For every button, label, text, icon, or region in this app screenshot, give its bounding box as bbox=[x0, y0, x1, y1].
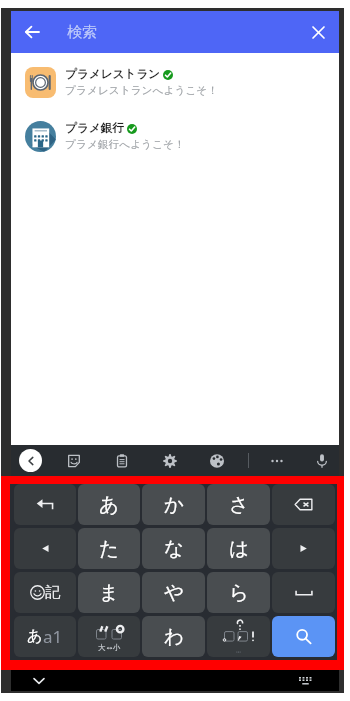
staticText: プラメレストランへようこそ！ bbox=[65, 84, 218, 97]
button[interactable]: Switch input mode bbox=[14, 616, 76, 657]
button[interactable]: Close bbox=[297, 11, 339, 53]
staticText: 記 bbox=[45, 583, 60, 602]
staticText: 大 bbox=[98, 643, 106, 652]
button[interactable]: ら bbox=[207, 572, 270, 613]
button[interactable]: Emoji and symbols bbox=[14, 572, 76, 613]
button[interactable]: Back bbox=[11, 11, 53, 53]
button[interactable]: あ bbox=[78, 484, 140, 525]
staticText: プラメレストラン bbox=[65, 67, 160, 82]
button[interactable]: More options bbox=[265, 449, 289, 473]
staticText: a1 bbox=[43, 625, 63, 648]
button[interactable]: Punctuation bbox=[207, 616, 270, 657]
button[interactable]: Hide keyboard bbox=[27, 670, 51, 691]
button[interactable]: さ bbox=[207, 484, 270, 525]
button[interactable]: な bbox=[142, 528, 205, 569]
button[interactable]: Switch keyboard bbox=[293, 670, 317, 691]
staticText: あ bbox=[99, 492, 119, 517]
button[interactable]: Cursor left bbox=[14, 528, 76, 569]
staticText: プラメ銀行 bbox=[65, 121, 124, 136]
button[interactable]: Clipboard bbox=[110, 449, 134, 473]
staticText: は bbox=[229, 536, 249, 561]
staticText: 検索 bbox=[67, 23, 97, 42]
button[interactable]: は bbox=[207, 528, 270, 569]
staticText: か bbox=[164, 492, 184, 517]
button[interactable]: Delete bbox=[272, 484, 335, 525]
staticText: た bbox=[99, 536, 119, 561]
staticText: ら bbox=[229, 580, 249, 605]
button[interactable]: Dakuten and small kana bbox=[78, 616, 140, 657]
staticText: や bbox=[164, 580, 184, 605]
button[interactable]: か bbox=[142, 484, 205, 525]
button[interactable]: Settings bbox=[158, 449, 182, 473]
button[interactable]: Voice input bbox=[310, 449, 334, 473]
button[interactable]: わ bbox=[142, 616, 205, 657]
staticText: プラメ銀行へようこそ！ bbox=[65, 138, 185, 151]
button[interactable]: Back bbox=[19, 449, 42, 472]
button[interactable]: や bbox=[142, 572, 205, 613]
staticText: 小 bbox=[113, 643, 121, 652]
button[interactable]: Space bbox=[272, 572, 335, 613]
staticText: さ bbox=[229, 492, 249, 517]
button[interactable]: Undo bbox=[14, 484, 76, 525]
button[interactable]: Stickers bbox=[62, 449, 86, 473]
button[interactable]: Search bbox=[272, 616, 335, 657]
button[interactable]: プラメ銀行 bbox=[11, 109, 339, 163]
button[interactable]: ま bbox=[78, 572, 140, 613]
staticText: ま bbox=[99, 580, 119, 605]
button[interactable]: Cursor right bbox=[272, 528, 335, 569]
staticText: な bbox=[164, 536, 184, 561]
button[interactable]: た bbox=[78, 528, 140, 569]
staticText: あ bbox=[27, 627, 43, 646]
button[interactable]: プラメレストラン bbox=[11, 55, 339, 109]
staticText: わ bbox=[164, 624, 184, 649]
button[interactable]: Themes bbox=[205, 449, 229, 473]
